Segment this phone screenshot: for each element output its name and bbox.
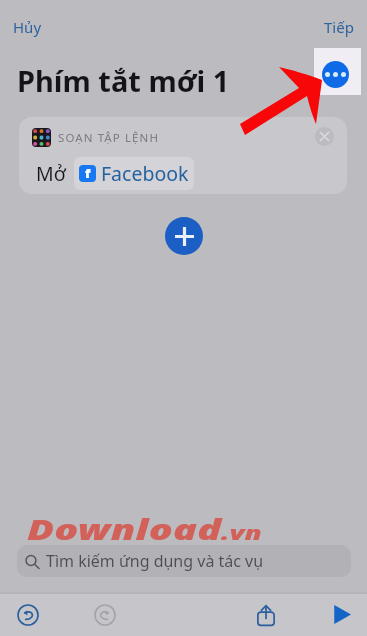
- button[interactable]: More options: [314, 48, 361, 95]
- staticText: Tiếp: [324, 17, 354, 37]
- staticText: f: [85, 165, 91, 181]
- staticText: Phím tắt mới 1: [17, 61, 230, 100]
- button[interactable]: Remove action: [315, 127, 334, 146]
- button[interactable]: Add action: [165, 217, 203, 255]
- button[interactable]: Run shortcut: [327, 600, 356, 629]
- button[interactable]: f: [74, 157, 194, 190]
- staticText: Mở: [36, 160, 66, 187]
- staticText: .vn: [221, 519, 262, 546]
- staticText: Download: [27, 510, 222, 548]
- button[interactable]: SOẠN TẬP LỆNH: [19, 117, 347, 194]
- staticText: Tìm kiếm ứng dụng và tác vụ: [46, 550, 264, 572]
- button[interactable]: Share: [251, 600, 280, 629]
- button[interactable]: Redo: [90, 600, 119, 629]
- staticText: SOẠN TẬP LỆNH: [58, 130, 160, 146]
- button[interactable]: Undo: [13, 600, 42, 629]
- button[interactable]: Hủy: [8, 13, 47, 41]
- button[interactable]: Tìm kiếm ứng dụng và tác vụ: [17, 545, 351, 577]
- button[interactable]: Tiếp: [319, 13, 359, 41]
- staticText: Hủy: [13, 17, 42, 37]
- staticText: Facebook: [101, 160, 189, 187]
